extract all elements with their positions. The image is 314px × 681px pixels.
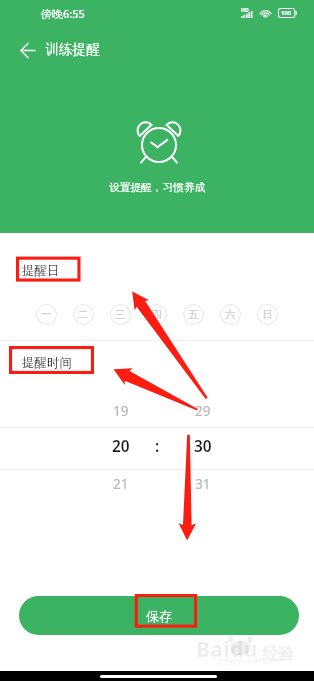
staticText: 100 (281, 9, 292, 17)
staticText: 设置提醒，习惯养成 (109, 181, 206, 194)
staticText: 一 (41, 308, 52, 321)
button[interactable]: 保存 (19, 596, 299, 635)
staticText: 经验 (262, 644, 294, 664)
button[interactable]: 五 (183, 304, 204, 325)
staticText: HD (241, 6, 249, 13)
staticText: 29 (195, 401, 211, 420)
staticText: 六 (225, 308, 236, 321)
staticText: 21 (113, 474, 129, 493)
staticText: 五 (188, 308, 199, 321)
button[interactable]: Back (6, 29, 50, 71)
button[interactable]: 四 (146, 304, 167, 325)
staticText: 四 (151, 308, 162, 321)
staticText: 保存 (146, 608, 172, 624)
staticText: 三 (115, 308, 126, 321)
staticText: jingyan.baidu.com (219, 656, 284, 666)
staticText: 30 (194, 436, 212, 457)
staticText: 日 (262, 308, 273, 321)
staticText: 20 (112, 436, 130, 457)
staticText: 二 (78, 308, 89, 321)
button[interactable]: 二 (73, 304, 94, 325)
staticText: 提醒日 (22, 263, 60, 279)
staticText: Baidu (196, 635, 258, 664)
staticText: 19 (113, 401, 129, 420)
staticText: : (155, 436, 160, 457)
button[interactable]: 日 (257, 304, 278, 325)
staticText: 傍晚6:55 (41, 6, 85, 21)
staticText: 训练提醒 (45, 41, 101, 58)
staticText: 31 (195, 474, 211, 493)
button[interactable]: 六 (220, 304, 241, 325)
button[interactable]: 一 (36, 304, 57, 325)
staticText: 提醒时间 (22, 355, 72, 371)
button[interactable]: 三 (110, 304, 131, 325)
button[interactable]: Home (100, 675, 217, 678)
